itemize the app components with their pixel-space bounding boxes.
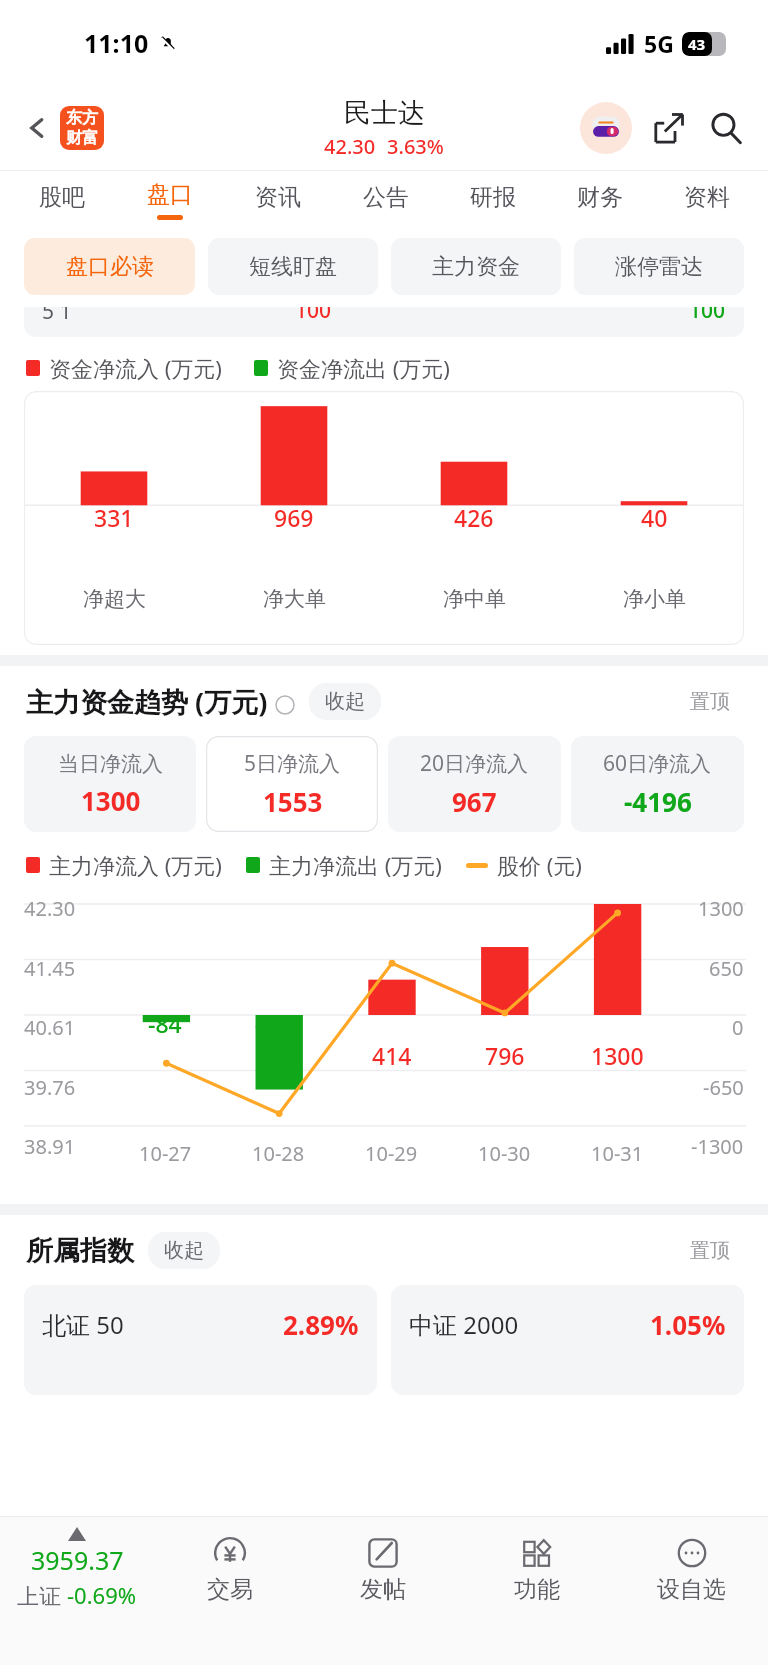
staticText: 涨停雷达 bbox=[615, 253, 703, 281]
staticText: 3.63% bbox=[387, 133, 444, 160]
staticText: 0 bbox=[732, 1014, 744, 1041]
staticText: 40 bbox=[641, 502, 668, 533]
button[interactable]: 短线盯盘 bbox=[208, 238, 378, 295]
button[interactable]: Share bbox=[646, 105, 692, 151]
staticText: 331 bbox=[94, 502, 134, 533]
staticText: 设自选 bbox=[657, 1575, 726, 1604]
staticText: 净大单 bbox=[263, 586, 326, 612]
staticText: 3959.37 bbox=[31, 1543, 124, 1577]
staticText: 主力资金趋势 (万元) bbox=[26, 683, 268, 720]
staticText: 1553 bbox=[263, 784, 323, 819]
button[interactable]: 盘口必读 bbox=[24, 238, 195, 295]
staticText: 20日净流入 bbox=[420, 749, 529, 778]
staticText: 上证 bbox=[17, 1580, 67, 1610]
staticText: 东方 bbox=[66, 108, 98, 128]
staticText: 资金净流入 (万元) bbox=[49, 353, 222, 383]
staticText: -84 bbox=[148, 1008, 182, 1039]
staticText: 10-30 bbox=[478, 1140, 531, 1167]
staticText: 收起 bbox=[164, 1238, 204, 1263]
button[interactable]: 资料 bbox=[653, 171, 760, 229]
staticText: 所属指数 bbox=[26, 1234, 134, 1268]
staticText: 42.30 bbox=[24, 895, 76, 922]
staticText: 置顶 bbox=[690, 1238, 730, 1263]
staticText: 收起 bbox=[325, 689, 365, 714]
button[interactable]: 中证 2000 bbox=[391, 1285, 744, 1395]
button[interactable]: 发帖 bbox=[306, 1517, 460, 1665]
staticText: 650 bbox=[709, 955, 744, 982]
staticText: 1300 bbox=[591, 1040, 644, 1071]
staticText: 39.76 bbox=[24, 1074, 76, 1101]
staticText: 股价 (元) bbox=[497, 850, 582, 880]
staticText: 研报 bbox=[470, 183, 516, 212]
button[interactable]: 3959.37 bbox=[0, 1517, 153, 1665]
staticText: 426 bbox=[454, 502, 494, 533]
button[interactable]: 股吧 bbox=[8, 171, 116, 229]
staticText: 2.89% bbox=[283, 1307, 359, 1342]
staticText: 38.91 bbox=[24, 1133, 76, 1160]
staticText: 北证 50 bbox=[42, 1308, 124, 1341]
staticText: 1300 bbox=[81, 783, 141, 818]
staticText: 主力净流出 (万元) bbox=[269, 850, 442, 880]
staticText: 5 1 bbox=[42, 307, 72, 326]
staticText: 置顶 bbox=[690, 689, 730, 714]
staticText: 11:10 bbox=[84, 26, 149, 60]
staticText: 796 bbox=[485, 1040, 525, 1071]
staticText: 100 bbox=[295, 307, 332, 325]
staticText: 主力净流入 (万元) bbox=[49, 850, 222, 880]
staticText: 10-31 bbox=[591, 1140, 644, 1167]
staticText: 969 bbox=[274, 502, 314, 533]
button[interactable]: 涨停雷达 bbox=[574, 238, 744, 295]
staticText: 交易 bbox=[207, 1575, 253, 1604]
button[interactable]: 60日净流入 bbox=[571, 736, 744, 832]
button[interactable]: 研报 bbox=[439, 171, 546, 229]
staticText: 100 bbox=[689, 307, 726, 325]
button[interactable]: 收起 bbox=[309, 683, 381, 720]
staticText: 短线盯盘 bbox=[249, 253, 337, 281]
staticText: -0.69% bbox=[67, 1580, 137, 1610]
staticText: 资料 bbox=[684, 183, 730, 212]
staticText: 公告 bbox=[363, 183, 409, 212]
button[interactable]: 设自选 bbox=[614, 1517, 768, 1665]
button[interactable]: 置顶 bbox=[676, 683, 744, 720]
button[interactable]: Back bbox=[14, 105, 60, 151]
button[interactable]: 东方 bbox=[60, 106, 104, 150]
staticText: 5日净流入 bbox=[244, 749, 341, 778]
staticText: -650 bbox=[703, 1074, 744, 1101]
button[interactable]: 财务 bbox=[546, 171, 653, 229]
staticText: 民士达 bbox=[344, 96, 425, 130]
button[interactable]: 5日净流入 bbox=[206, 736, 378, 832]
button[interactable]: 收起 bbox=[148, 1232, 220, 1269]
button[interactable]: 主力资金 bbox=[391, 238, 561, 295]
staticText: 10-27 bbox=[139, 1140, 192, 1167]
staticText: 1300 bbox=[698, 895, 744, 922]
button[interactable]: 功能 bbox=[460, 1517, 614, 1665]
button[interactable]: Search bbox=[702, 104, 750, 152]
button[interactable]: 资讯 bbox=[224, 171, 332, 229]
staticText: 60日净流入 bbox=[603, 749, 712, 778]
staticText: 10-28 bbox=[252, 1140, 305, 1167]
staticText: -1300 bbox=[691, 1133, 744, 1160]
staticText: 41.45 bbox=[24, 955, 76, 982]
staticText: 40.61 bbox=[24, 1014, 76, 1041]
staticText: 财务 bbox=[577, 183, 623, 212]
staticText: 主力资金 bbox=[432, 253, 520, 281]
button[interactable]: 北证 50 bbox=[24, 1285, 377, 1395]
staticText: 43 bbox=[688, 34, 706, 54]
staticText: 资金净流出 (万元) bbox=[277, 353, 450, 383]
staticText: 967 bbox=[452, 784, 497, 819]
staticText: -4196 bbox=[624, 784, 692, 819]
staticText: 盘口 bbox=[147, 180, 193, 209]
staticText: 当日净流入 bbox=[58, 751, 163, 777]
staticText: -873 bbox=[255, 1008, 302, 1039]
button[interactable]: 公告 bbox=[332, 171, 439, 229]
staticText: 功能 bbox=[514, 1575, 560, 1604]
button[interactable]: AI assistant bbox=[580, 102, 632, 154]
button[interactable]: 交易 bbox=[153, 1517, 306, 1665]
button[interactable]: 盘口 bbox=[116, 171, 224, 229]
staticText: 净中单 bbox=[443, 586, 506, 612]
staticText: 中证 2000 bbox=[409, 1308, 519, 1341]
button[interactable]: 置顶 bbox=[676, 1232, 744, 1269]
button[interactable]: 20日净流入 bbox=[388, 736, 561, 832]
button[interactable]: 当日净流入 bbox=[24, 736, 196, 832]
staticText: 资讯 bbox=[255, 183, 301, 212]
